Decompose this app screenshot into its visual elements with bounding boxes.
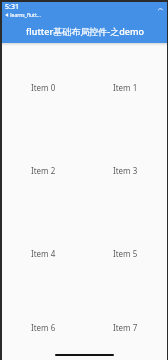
staticText: Item 3 xyxy=(113,165,138,176)
button[interactable]: Item 7 xyxy=(84,295,167,360)
staticText: 5:31 xyxy=(5,2,19,12)
button[interactable]: Item 4 xyxy=(2,212,84,295)
staticText: Item 1 xyxy=(113,82,138,93)
staticText: Item 7 xyxy=(113,322,138,333)
staticText: Item 5 xyxy=(113,248,138,259)
staticText: Item 0 xyxy=(31,82,56,93)
button[interactable]: Item 0 xyxy=(2,46,84,129)
staticText: learns_flutt... xyxy=(9,12,41,18)
staticText: Item 2 xyxy=(31,165,56,176)
staticText: flutter基础布局控件-之demo xyxy=(26,25,144,37)
button[interactable]: Item 5 xyxy=(84,212,167,295)
staticText: Item 4 xyxy=(31,248,56,259)
button[interactable]: Item 1 xyxy=(84,46,167,129)
button[interactable]: Item 2 xyxy=(2,129,84,212)
button[interactable]: Item 3 xyxy=(84,129,167,212)
button[interactable]: Item 6 xyxy=(2,295,84,360)
staticText: Item 6 xyxy=(31,322,56,333)
